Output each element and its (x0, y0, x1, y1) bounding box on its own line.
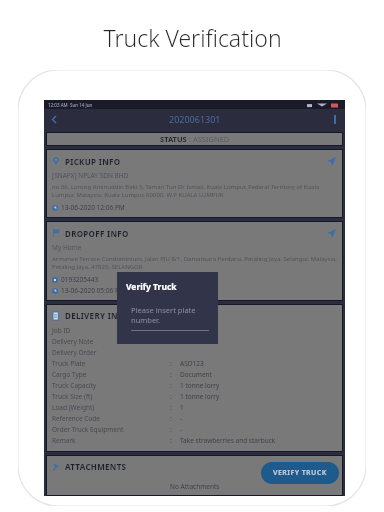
staticText: Load (Weight) (52, 403, 170, 412)
staticText: 13-06-2020 12:06 PM (61, 203, 125, 212)
staticText: No Attachments (170, 482, 220, 491)
staticText: Truck Capacity (52, 381, 170, 390)
button[interactable]: Back (44, 109, 64, 129)
staticText: STATUS (160, 134, 187, 144)
button[interactable]: More options (325, 109, 345, 129)
staticText: 1 (180, 403, 184, 412)
button[interactable]: VERIFY TRUCK (261, 462, 339, 484)
staticText: Delivery Note (52, 337, 170, 346)
staticText: VERIFY TRUCK (273, 468, 327, 478)
button[interactable]: PICKUP INFO (47, 150, 342, 217)
staticText: Order Truck Equipment (52, 425, 170, 434)
staticText: no 66, Lorong Aminuddin Baki 3, Taman Tu… (52, 183, 337, 199)
staticText: [SNAPX] NPLAY SDN BHD (52, 171, 129, 180)
staticText: DELIVERY INFO (65, 310, 130, 321)
staticText: ATTACHMENTS (65, 461, 127, 472)
staticText: : (170, 403, 180, 412)
staticText: Truck Size (ft) (52, 392, 170, 401)
staticText: : (170, 370, 180, 379)
staticText: : ASSIGNED (187, 134, 230, 144)
button[interactable]: DROPOFF INFO (47, 222, 342, 300)
staticText: 2020061301 (169, 113, 221, 125)
staticText: Document (180, 370, 212, 379)
staticText: Verify Truck (126, 281, 177, 293)
staticText: Armanee Terrace Condominium, Jalan PJU 8… (52, 255, 337, 271)
staticText: Delivery Order (52, 348, 170, 357)
staticText: PICKUP INFO (65, 156, 121, 167)
button[interactable]: ATTACHMENTS (47, 456, 342, 495)
staticText: : (170, 414, 180, 423)
button[interactable]: Navigate (325, 227, 337, 239)
button[interactable]: DELIVERY INFO (47, 305, 342, 451)
staticText: : (170, 392, 180, 401)
staticText: My Home (52, 243, 82, 252)
staticText: Job ID (52, 326, 170, 335)
staticText (170, 326, 180, 335)
staticText: Reference Code (52, 414, 170, 423)
button[interactable]: STATUS (47, 133, 342, 145)
staticText: ASD123 (180, 359, 204, 368)
staticText: - (180, 425, 183, 434)
staticText: DROPOFF INFO (65, 228, 129, 239)
staticText: 12:03 AM Sun 14 Jun (48, 102, 93, 108)
staticText: Please insert plate number. (131, 305, 209, 325)
staticText: : (170, 436, 180, 445)
staticText: 0193205443 (61, 275, 99, 284)
staticText: Cargo Type (52, 370, 170, 379)
staticText: : (170, 359, 180, 368)
staticText: 13-06-2020 05:06 PM (61, 286, 125, 295)
staticText: Take strawberries and starbuck (180, 436, 276, 445)
staticText: Remark (52, 436, 170, 445)
staticText: 1 tonne lorry (180, 392, 220, 401)
button[interactable]: Navigate (325, 155, 337, 167)
staticText: - (180, 414, 183, 423)
staticText: 1 tonne lorry (180, 381, 220, 390)
staticText (170, 337, 180, 346)
staticText: Truck Plate (52, 359, 170, 368)
staticText: Truck Verification (103, 22, 282, 53)
staticText: : (170, 381, 180, 390)
staticText: : (170, 425, 180, 434)
